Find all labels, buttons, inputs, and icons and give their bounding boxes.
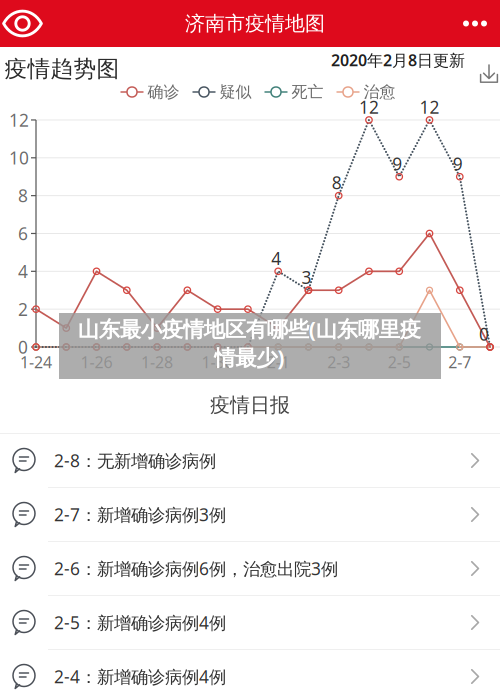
staticText: 确诊 [147,82,179,102]
staticText: 1-26 [80,351,112,373]
staticText: 2-8：无新增确诊病例 [54,449,216,472]
staticText: 2-5 [388,351,411,373]
staticText: 2 [18,298,28,321]
staticText: 10 [9,146,29,169]
button[interactable]: 2-4：新增确诊病例4例 [0,650,500,693]
staticText: 2-3 [327,351,350,373]
staticText: 1-24 [20,351,52,373]
staticText: 2-7：新增确诊病例3例 [54,503,226,526]
staticText: 2-5：新增确诊病例4例 [54,611,226,634]
button[interactable]: More [449,0,500,47]
button[interactable]: 2-7：新增确诊病例3例 [0,488,500,542]
staticText: 山东最小疫情地区有哪些(山东哪里疫情最少) [77,315,420,371]
staticText: 12 [359,95,379,118]
staticText: 济南市疫情地图 [185,11,325,36]
staticText: 9 [453,152,463,175]
button[interactable]: 2-5：新增确诊病例4例 [0,596,500,650]
button[interactable]: 2-6：新增确诊病例6例，治愈出院3例 [0,542,500,596]
staticText: 4 [18,260,28,283]
staticText: 疫情日报 [210,393,290,417]
staticText: 死亡 [291,82,323,102]
staticText: 0 [479,322,489,345]
button[interactable]: Browse [0,0,55,47]
staticText: 0 [18,335,28,358]
staticText: 3 [301,266,311,289]
staticText: 2-6：新增确诊病例6例，治愈出院3例 [54,557,338,580]
staticText: 疫情趋势图 [4,55,119,83]
staticText: 9 [392,152,402,175]
staticText: 2020年2月8日更新 [331,49,465,71]
staticText: 1-28 [141,351,173,373]
staticText: 12 [9,108,29,131]
staticText: 1-30 [202,351,234,373]
staticText: 2-4：新增确诊病例4例 [54,665,226,688]
button[interactable]: Download [480,65,498,83]
staticText: 8 [18,184,28,207]
staticText: 6 [18,222,28,245]
staticText: 12 [419,95,439,118]
staticText: 4 [271,247,281,270]
staticText: 8 [332,171,342,194]
staticText: 2-7 [448,351,471,373]
staticText: 治愈 [363,82,395,102]
button[interactable]: 2-8：无新增确诊病例 [0,434,500,488]
staticText: 2-1 [267,351,290,373]
staticText: 疑似 [219,82,251,102]
